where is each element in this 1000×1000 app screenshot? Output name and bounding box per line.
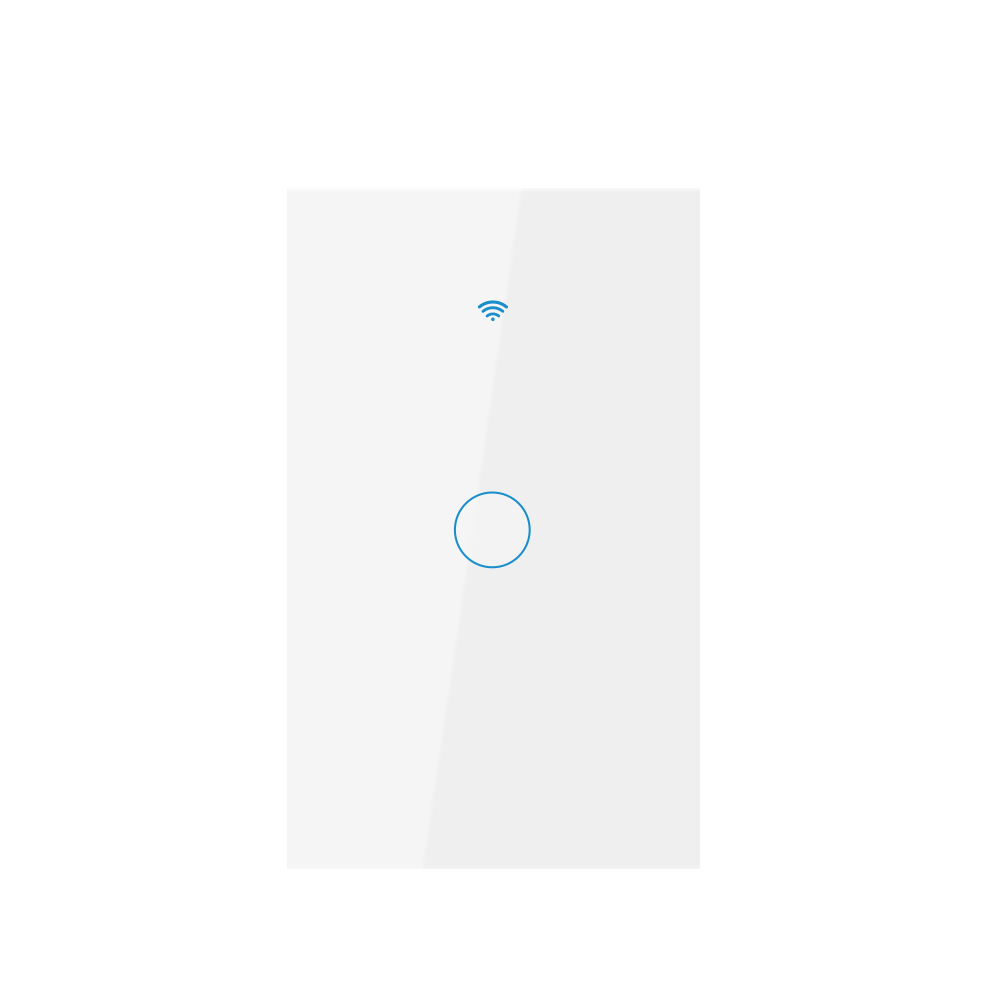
button[interactable]: Toggle switch	[455, 492, 530, 567]
